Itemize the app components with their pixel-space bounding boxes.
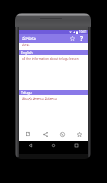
button[interactable]: Bookmark [71, 127, 88, 141]
button[interactable]: Favourite [67, 34, 77, 43]
button[interactable]: Home [42, 141, 65, 154]
button[interactable]: Help [77, 34, 87, 43]
staticText: మాటలు [22, 36, 37, 42]
button[interactable]: Back [19, 141, 42, 154]
button[interactable]: Recents [65, 141, 88, 154]
staticText: ? [80, 34, 84, 43]
button[interactable]: WhatsApp [54, 127, 71, 141]
staticText: తెలుగు పాఠాలు వివరాలు [22, 96, 57, 102]
button[interactable]: Copy [19, 127, 37, 141]
staticText: మాట [22, 43, 30, 48]
staticText: Telugu [21, 90, 32, 95]
button[interactable]: Share [37, 127, 54, 141]
staticText: 10:01 [79, 30, 87, 34]
staticText: English [21, 50, 33, 55]
staticText: all the information about telugu lesson [22, 57, 79, 61]
